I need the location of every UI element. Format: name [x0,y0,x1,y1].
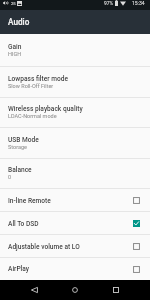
staticText: Lowpass filter mode [8,75,68,83]
button[interactable]: Balance [0,159,150,189]
button[interactable]: In-line Remote [0,189,150,212]
staticText: 97% [104,0,114,6]
button[interactable]: Recent apps [103,280,129,300]
staticText: Gain [8,43,22,51]
button[interactable]: USB Mode [0,128,150,159]
staticText: 0 [8,174,12,180]
button[interactable]: Gain [0,34,150,67]
staticText: USB Mode [8,136,39,144]
staticText: Audio [8,17,30,27]
staticText: HIGH [8,51,22,57]
button[interactable]: All To DSD [0,212,150,235]
button[interactable]: AirPlay [0,258,150,280]
staticText: 15:34 [132,0,145,6]
button[interactable]: Back [21,280,47,300]
button[interactable]: Adjustable volume at LO [0,235,150,258]
staticText: Wireless playback quality [8,105,83,113]
staticText: Balance [8,166,32,174]
button[interactable]: Lowpass filter mode [0,67,150,98]
staticText: AirPlay [8,265,30,273]
staticText: All To DSD [8,220,39,228]
button[interactable]: Wireless playback quality [0,98,150,128]
staticText: Slow Roll-Off Filter [8,83,54,89]
button[interactable]: Home [62,280,88,300]
staticText: Adjustable volume at LO [8,243,80,251]
staticText: LDAC-Normal mode [8,113,57,119]
staticText: In-line Remote [8,197,51,205]
staticText: Storage [8,144,27,150]
staticText: 25 [11,1,16,6]
